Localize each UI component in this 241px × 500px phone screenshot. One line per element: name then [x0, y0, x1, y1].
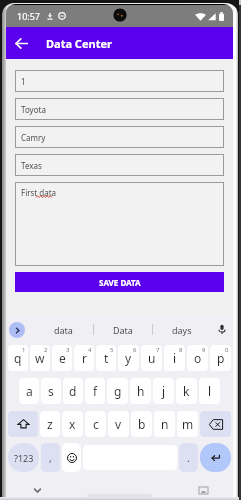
- button[interactable]: Voice input: [211, 316, 233, 343]
- button[interactable]: a: [19, 378, 39, 404]
- button[interactable]: v: [108, 411, 129, 437]
- button[interactable]: ,: [41, 443, 60, 472]
- button[interactable]: e: [52, 345, 72, 371]
- button[interactable]: n: [154, 411, 175, 437]
- staticText: e: [59, 350, 66, 366]
- staticText: x: [69, 416, 76, 432]
- staticText: 1: [22, 346, 26, 354]
- staticText: d: [69, 383, 77, 399]
- button[interactable]: m: [177, 411, 198, 437]
- staticText: 3: [66, 346, 70, 354]
- button[interactable]: z: [40, 411, 60, 437]
- staticText: q: [14, 350, 22, 366]
- button[interactable]: q: [8, 345, 28, 371]
- staticText: data: [54, 324, 73, 336]
- button[interactable]: SAVE DATA: [15, 272, 224, 292]
- button[interactable]: w: [30, 345, 50, 371]
- staticText: 8: [179, 346, 183, 354]
- staticText: y: [125, 350, 132, 366]
- staticText: SAVE DATA: [99, 277, 141, 288]
- staticText: p: [217, 350, 225, 366]
- staticText: s: [48, 383, 54, 399]
- staticText: ,: [49, 451, 52, 465]
- button[interactable]: j: [153, 378, 174, 404]
- button[interactable]: h: [130, 378, 151, 404]
- button[interactable]: t: [96, 345, 116, 371]
- staticText: 1: [21, 76, 26, 87]
- staticText: n: [161, 416, 169, 432]
- staticText: i: [173, 350, 177, 366]
- staticText: o: [194, 350, 202, 366]
- button[interactable]: b: [131, 411, 152, 437]
- staticText: 5: [110, 346, 114, 354]
- button[interactable]: More suggestions: [9, 322, 25, 338]
- button[interactable]: c: [85, 411, 106, 437]
- button[interactable]: First data: [15, 182, 224, 266]
- button[interactable]: Backspace: [200, 411, 231, 437]
- button[interactable]: r: [74, 345, 94, 371]
- button[interactable]: k: [176, 378, 197, 404]
- staticText: days: [172, 324, 192, 336]
- staticText: z: [47, 416, 53, 432]
- button[interactable]: p: [210, 345, 231, 371]
- button[interactable]: Enter: [200, 443, 231, 472]
- button[interactable]: Change keyboard: [196, 483, 210, 497]
- staticText: b: [138, 416, 146, 432]
- staticText: g: [114, 383, 122, 399]
- button[interactable]: Shift: [8, 411, 38, 437]
- staticText: 6: [133, 346, 137, 354]
- staticText: h: [137, 383, 145, 399]
- staticText: .: [187, 451, 190, 465]
- staticText: Camry: [21, 132, 46, 143]
- staticText: r: [82, 350, 87, 366]
- staticText: v: [115, 416, 122, 432]
- staticText: m: [182, 416, 194, 432]
- button[interactable]: l: [199, 378, 220, 404]
- button[interactable]: Data: [94, 316, 152, 343]
- staticText: c: [93, 416, 99, 432]
- button[interactable]: days: [153, 316, 211, 343]
- button[interactable]: Hide keyboard: [30, 483, 44, 497]
- button[interactable]: Toyota: [15, 98, 224, 120]
- staticText: 10:57: [17, 10, 41, 22]
- button[interactable]: Texas: [15, 154, 224, 176]
- button[interactable]: x: [62, 411, 83, 437]
- staticText: 0: [225, 346, 229, 354]
- staticText: 4: [88, 346, 92, 354]
- staticText: t: [104, 350, 109, 366]
- staticText: Data: [113, 324, 133, 336]
- button[interactable]: g: [107, 378, 128, 404]
- staticText: w: [35, 350, 45, 366]
- button[interactable]: Emoji: [62, 443, 81, 472]
- button[interactable]: o: [187, 345, 208, 371]
- button[interactable]: f: [85, 378, 105, 404]
- button[interactable]: 1: [15, 70, 224, 92]
- staticText: 7: [156, 346, 160, 354]
- staticText: 2: [44, 346, 48, 354]
- staticText: Toyota: [21, 104, 46, 115]
- button[interactable]: i: [164, 345, 185, 371]
- button[interactable]: Back: [6, 28, 36, 59]
- button[interactable]: y: [118, 345, 139, 371]
- button[interactable]: d: [63, 378, 83, 404]
- staticText: Texas: [21, 160, 42, 171]
- staticText: l: [208, 383, 212, 399]
- staticText: ?123: [14, 452, 34, 464]
- staticText: u: [148, 350, 156, 366]
- button[interactable]: ?123: [8, 443, 39, 472]
- button[interactable]: .: [179, 443, 198, 472]
- staticText: k: [183, 383, 190, 399]
- button[interactable]: data: [34, 316, 93, 343]
- staticText: Data Center: [46, 36, 112, 51]
- button[interactable]: Camry: [15, 126, 224, 148]
- staticText: j: [162, 383, 166, 399]
- button[interactable]: u: [141, 345, 162, 371]
- staticText: f: [93, 383, 98, 399]
- button[interactable]: s: [41, 378, 61, 404]
- staticText: First data: [21, 187, 57, 198]
- staticText: a: [26, 383, 33, 399]
- staticText: 9: [202, 346, 206, 354]
